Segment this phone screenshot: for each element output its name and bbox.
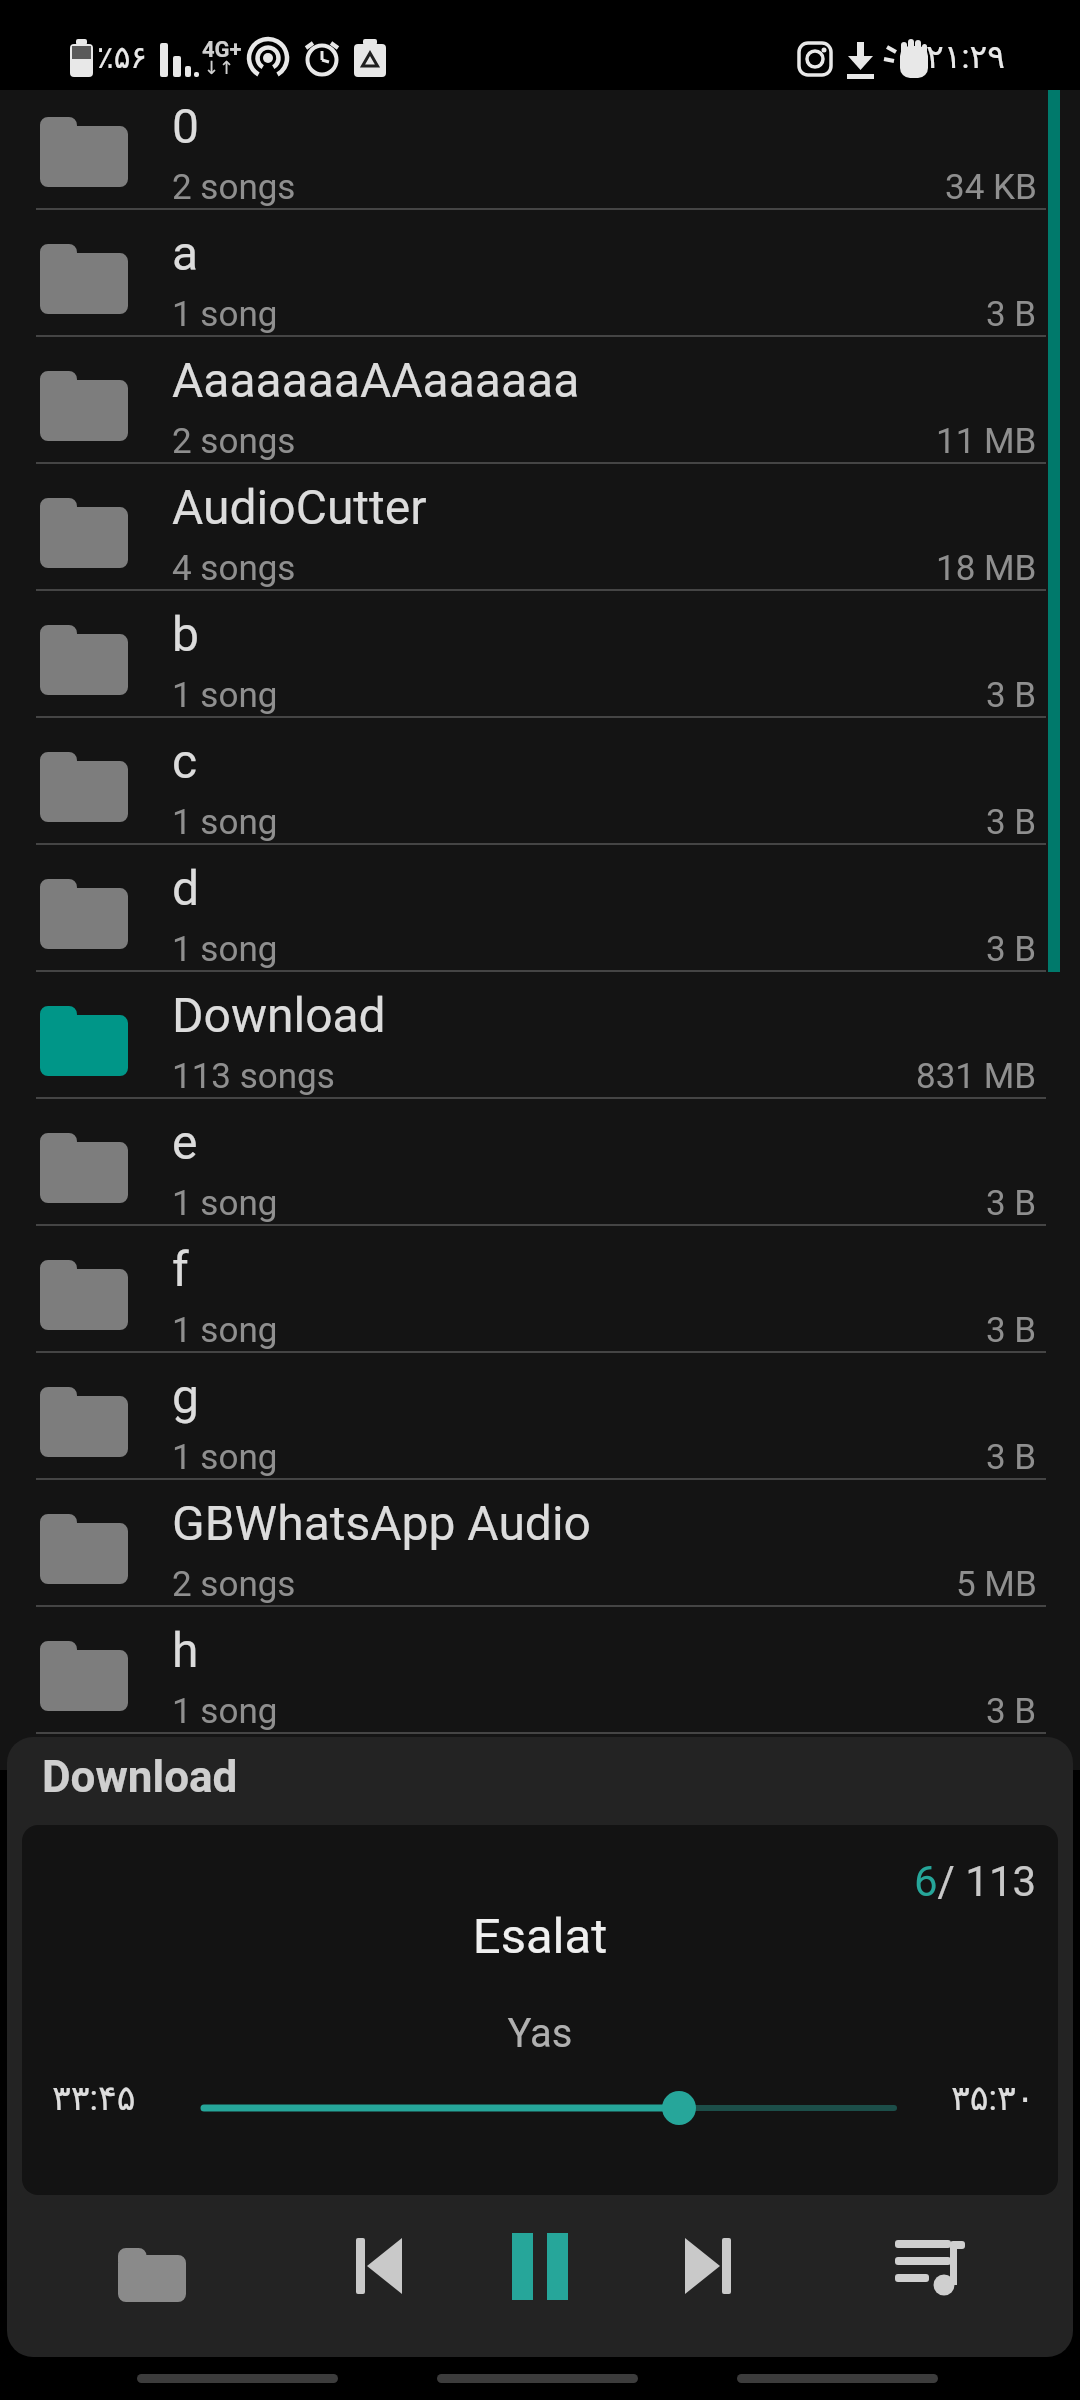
button[interactable] — [22, 1825, 1058, 2195]
staticText: 2 songs — [172, 421, 296, 462]
button[interactable]: h — [0, 1607, 1080, 1734]
staticText: 1 song — [172, 802, 278, 843]
staticText: 3 B — [986, 929, 1037, 970]
staticText: 34 KB — [945, 167, 1037, 208]
staticText: Esalat — [22, 1908, 1058, 1965]
staticText: 3 B — [986, 1183, 1037, 1224]
staticText: e — [172, 1114, 198, 1170]
button[interactable]: c — [0, 718, 1080, 845]
button[interactable] — [675, 2233, 741, 2299]
button[interactable]: g — [0, 1353, 1080, 1480]
button[interactable]: 0 — [0, 83, 1080, 210]
staticText: c — [172, 733, 198, 789]
staticText: 1 song — [172, 929, 278, 970]
button[interactable]: d — [0, 845, 1080, 972]
staticText: 1 song — [172, 1183, 278, 1224]
staticText: 1 song — [172, 1310, 278, 1351]
button[interactable]: AudioCutter — [0, 464, 1080, 591]
staticText: 11 MB — [936, 421, 1037, 462]
staticText: 3 B — [986, 802, 1037, 843]
staticText: h — [172, 1622, 199, 1678]
button[interactable]: AaaaaaaAAaaaaaa — [0, 337, 1080, 464]
staticText: d — [172, 860, 200, 916]
staticText: 1 song — [172, 1437, 278, 1478]
button[interactable] — [505, 2233, 589, 2317]
staticText: ۲۱:۲۹ — [926, 37, 1005, 76]
staticText: f — [172, 1241, 189, 1297]
staticText: g — [172, 1368, 199, 1424]
staticText: GBWhatsApp Audio — [172, 1495, 591, 1551]
staticText: 1 song — [172, 1691, 278, 1732]
button[interactable] — [111, 2242, 193, 2308]
staticText: Yas — [22, 2010, 1058, 2057]
button[interactable] — [887, 2233, 973, 2299]
staticText: AaaaaaaAAaaaaaa — [172, 352, 580, 408]
staticText: 3 B — [986, 294, 1037, 335]
staticText: Download — [42, 1751, 238, 1803]
staticText: 3 B — [986, 1691, 1037, 1732]
staticText: 4G+ — [202, 37, 242, 63]
button[interactable]: a — [0, 210, 1080, 337]
staticText: AudioCutter — [172, 479, 427, 535]
staticText: 113 songs — [172, 1056, 335, 1097]
button[interactable]: f — [0, 1226, 1080, 1353]
staticText: 1 song — [172, 675, 278, 716]
button[interactable]: b — [0, 591, 1080, 718]
staticText: 3 B — [986, 675, 1037, 716]
staticText: 0 — [172, 98, 199, 154]
staticText: 18 MB — [936, 548, 1037, 589]
staticText: ۳۵:۳۰ — [951, 2078, 1035, 2119]
staticText: b — [172, 606, 199, 662]
staticText: a — [172, 225, 199, 281]
staticText: ۳۳:۴۵ — [52, 2078, 136, 2119]
staticText: 2 songs — [172, 167, 296, 208]
button[interactable]: Download — [0, 972, 1080, 1099]
staticText: Download — [172, 987, 386, 1043]
staticText: 831 MB — [916, 1056, 1037, 1097]
staticText: 1 song — [172, 294, 278, 335]
staticText: 4 songs — [172, 548, 296, 589]
staticText: 5 MB — [956, 1564, 1037, 1605]
staticText: ↓↑ — [204, 57, 235, 78]
staticText: 3 B — [986, 1310, 1037, 1351]
button[interactable]: e — [0, 1099, 1080, 1226]
staticText: 3 B — [986, 1437, 1037, 1478]
button[interactable]: GBWhatsApp Audio — [0, 1480, 1080, 1607]
staticText: 6/ 113 — [914, 1857, 1037, 1906]
staticText: 2 songs — [172, 1564, 296, 1605]
staticText: ٪۵۶ — [97, 39, 147, 75]
button[interactable] — [349, 2233, 415, 2299]
